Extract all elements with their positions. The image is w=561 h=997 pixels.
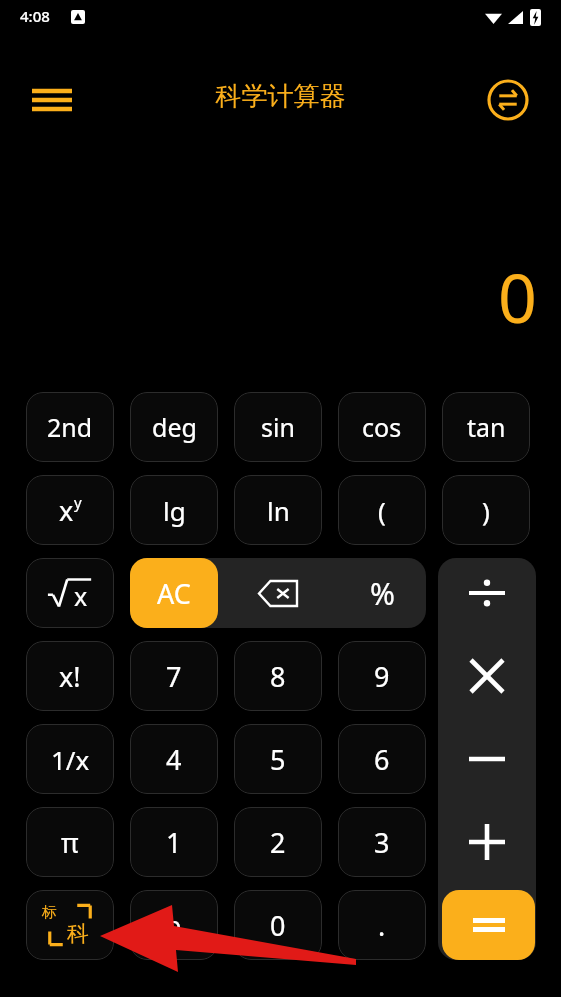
button[interactable]: tan — [442, 392, 530, 462]
button[interactable]: x! — [26, 641, 114, 711]
staticText: 6 — [374, 741, 390, 778]
button[interactable]: 1/x — [26, 724, 114, 794]
button[interactable]: 1 — [130, 807, 218, 877]
button[interactable]: . — [338, 890, 426, 960]
staticText: lg — [163, 493, 186, 528]
button[interactable]: Plus — [438, 807, 536, 877]
staticText: 8 — [270, 658, 286, 695]
button[interactable]: 6 — [338, 724, 426, 794]
staticText: sin — [261, 410, 295, 444]
staticText: 2nd — [47, 410, 93, 444]
button[interactable]: 9 — [338, 641, 426, 711]
button[interactable]: AC — [130, 558, 218, 628]
staticText: ) — [482, 493, 490, 528]
staticText: ln — [267, 493, 290, 528]
button[interactable]: ln — [234, 475, 322, 545]
button[interactable]: 4 — [130, 724, 218, 794]
button[interactable]: 7 — [130, 641, 218, 711]
staticText: 0 — [270, 907, 286, 944]
staticText: cos — [362, 410, 402, 444]
button[interactable]: Multiply — [438, 641, 536, 711]
staticText: % — [370, 573, 395, 614]
button[interactable]: π — [26, 807, 114, 877]
button[interactable]: cos — [338, 392, 426, 462]
staticText: deg — [152, 410, 197, 444]
staticText: 4:08 — [20, 6, 50, 26]
button[interactable]: % — [338, 558, 426, 628]
staticText: 4 — [166, 741, 182, 778]
button[interactable]: Backspace — [234, 558, 322, 628]
button[interactable]: Switch — [478, 70, 538, 130]
button[interactable]: Switch standard scientific — [26, 890, 114, 960]
staticText: 科 — [67, 920, 89, 948]
staticText: 标 — [42, 903, 57, 922]
staticText: 9 — [374, 658, 390, 695]
button[interactable]: x to the power of y — [26, 475, 114, 545]
staticText: 1/x — [51, 742, 90, 777]
button[interactable]: 2nd — [26, 392, 114, 462]
button[interactable]: Divide — [438, 558, 536, 628]
button[interactable]: 5 — [234, 724, 322, 794]
button[interactable]: ( — [338, 475, 426, 545]
staticText: e — [166, 907, 182, 944]
staticText: x — [59, 492, 74, 529]
staticText: 5 — [270, 741, 286, 778]
button[interactable]: 2 — [234, 807, 322, 877]
button[interactable]: lg — [130, 475, 218, 545]
staticText: 7 — [166, 658, 182, 695]
button[interactable]: 8 — [234, 641, 322, 711]
button[interactable]: 3 — [338, 807, 426, 877]
button[interactable]: ) — [442, 475, 530, 545]
button[interactable]: 0 — [234, 890, 322, 960]
staticText: 1 — [166, 824, 182, 861]
button[interactable]: e — [130, 890, 218, 960]
staticText: 科学计算器 — [0, 80, 561, 113]
staticText: 0 — [498, 250, 537, 343]
staticText: tan — [467, 410, 506, 444]
staticText: . — [378, 907, 386, 944]
button[interactable]: deg — [130, 392, 218, 462]
staticText: 3 — [374, 824, 390, 861]
staticText: AC — [157, 575, 191, 612]
staticText: 2 — [270, 824, 286, 861]
staticText: y — [74, 492, 82, 512]
button[interactable]: Minus — [438, 724, 536, 794]
staticText: x! — [59, 658, 81, 695]
staticText: ( — [378, 493, 386, 528]
button[interactable]: Square root of x — [26, 558, 114, 628]
staticText: π — [61, 824, 79, 861]
button[interactable]: Equals — [442, 890, 535, 960]
button[interactable]: sin — [234, 392, 322, 462]
staticText: x — [74, 579, 88, 613]
button[interactable]: Menu — [22, 70, 82, 130]
